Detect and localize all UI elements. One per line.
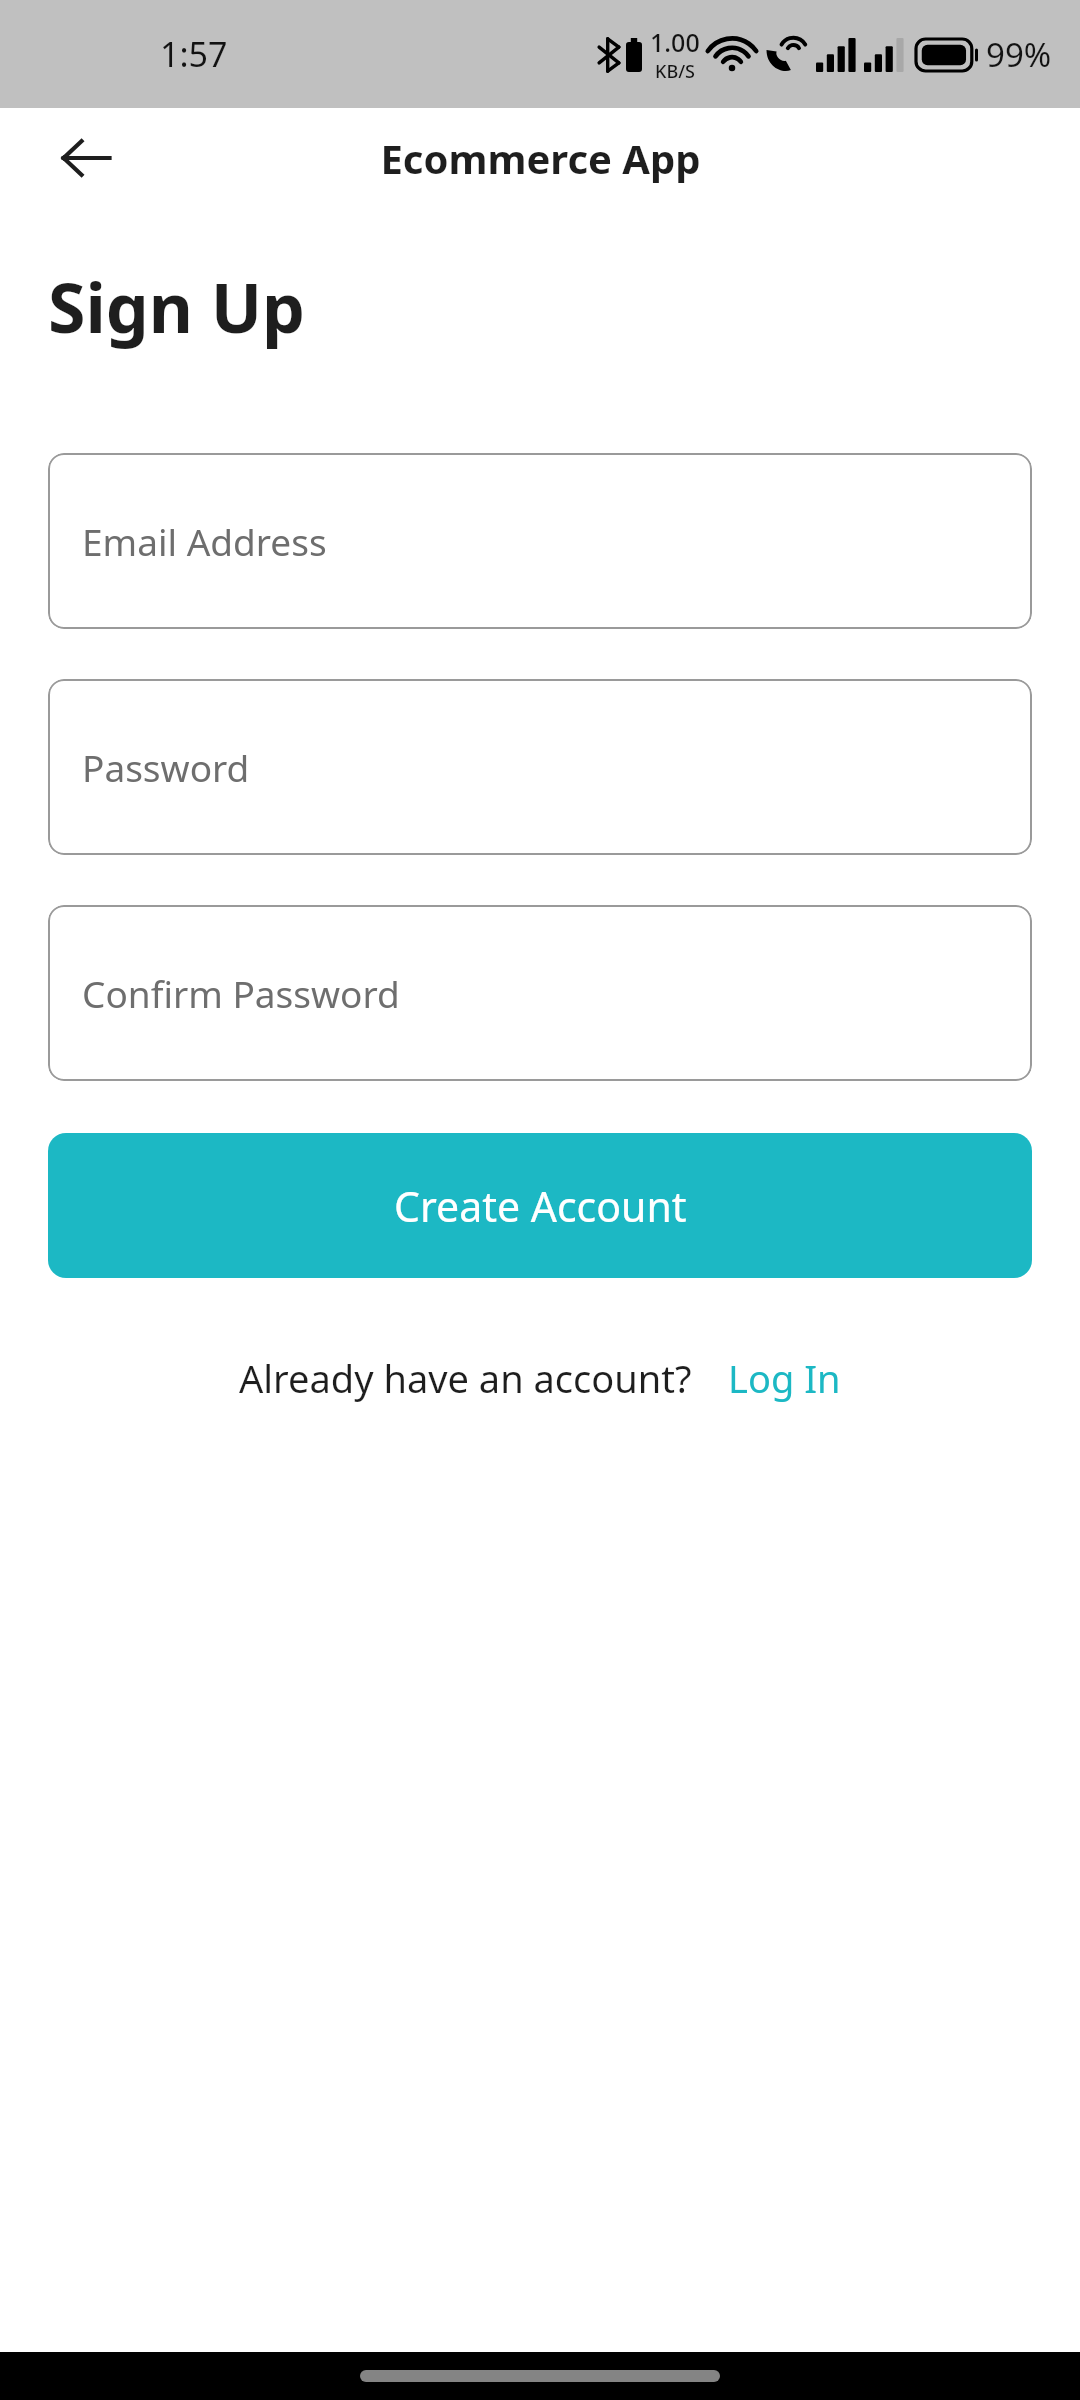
staticText: Ecommerce App [380,131,701,185]
staticText: Email Address [82,516,327,566]
button[interactable]: Password [48,679,1032,855]
staticText: Create Account [394,1178,687,1234]
staticText: Password [82,742,250,792]
staticText: 1:57 [160,31,228,77]
staticText: KB/S [655,59,695,84]
staticText: Confirm Password [82,968,400,1018]
button[interactable]: Create Account [48,1133,1032,1278]
button[interactable]: Confirm Password [48,905,1032,1081]
button[interactable]: Log In [728,1352,841,1404]
staticText: Sign Up [48,260,306,353]
staticText: 99% [986,32,1052,77]
staticText: Log In [728,1352,841,1404]
button[interactable]: Back [36,108,136,208]
button[interactable]: Email Address [48,453,1032,629]
staticText: Already have an account? [239,1352,692,1404]
staticText: 1.00 [650,25,700,59]
